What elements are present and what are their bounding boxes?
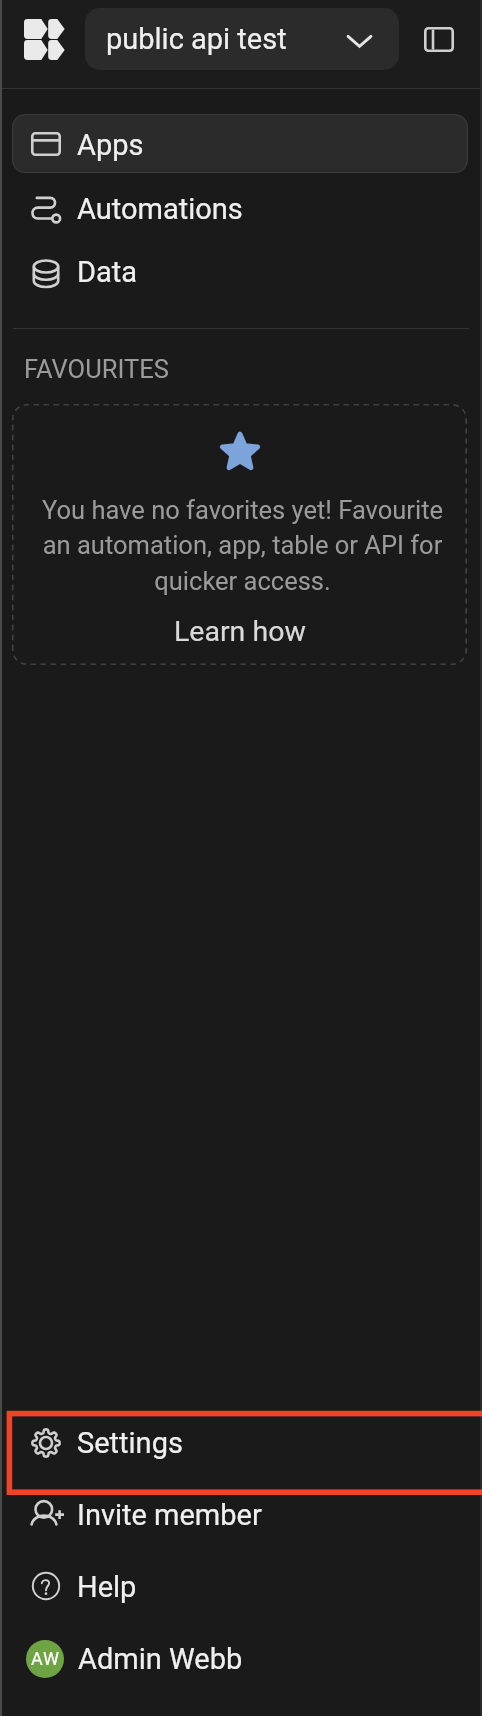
button[interactable]: Learn how xyxy=(167,611,312,651)
button[interactable]: Workspace home xyxy=(14,9,74,69)
staticText: You have no favorites yet! Favourite an … xyxy=(31,495,454,597)
button[interactable]: Help xyxy=(12,1556,468,1615)
button[interactable]: public api test xyxy=(85,8,399,70)
staticText: Learn how xyxy=(174,615,306,648)
staticText: Automations xyxy=(77,192,243,226)
staticText: Help xyxy=(77,1570,137,1604)
button[interactable]: Automations xyxy=(12,178,468,237)
staticText: AW xyxy=(31,1648,60,1669)
staticText: Data xyxy=(77,255,138,289)
staticText: Settings xyxy=(77,1426,183,1460)
button[interactable]: AW xyxy=(0,1627,482,1691)
button[interactable]: Invite member xyxy=(12,1483,468,1542)
staticText: FAVOURITES xyxy=(24,354,169,384)
button[interactable]: Toggle sidebar xyxy=(413,14,464,65)
button[interactable]: Settings xyxy=(12,1412,468,1471)
staticText: Apps xyxy=(77,128,144,162)
button[interactable]: Data xyxy=(12,241,468,300)
staticText: Invite member xyxy=(77,1498,262,1532)
staticText: Admin Webb xyxy=(78,1642,243,1676)
button[interactable]: Apps xyxy=(12,114,468,173)
staticText: public api test xyxy=(106,22,287,56)
